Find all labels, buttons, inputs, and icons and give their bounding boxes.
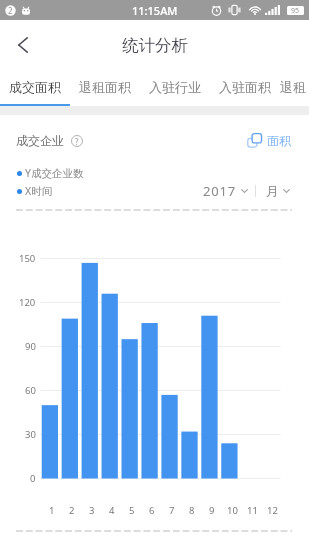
staticText: 3 bbox=[89, 504, 95, 517]
other: Vibrate bbox=[228, 4, 241, 16]
button[interactable]: 2017 bbox=[203, 182, 248, 200]
staticText: 60 bbox=[25, 384, 36, 397]
staticText: 2 bbox=[8, 5, 13, 16]
button[interactable]: 退租面积 bbox=[70, 69, 140, 104]
staticText: 12 bbox=[267, 504, 278, 517]
staticText: 8 bbox=[189, 504, 195, 517]
staticText: 11:15AM bbox=[132, 3, 178, 18]
button[interactable]: 面积 bbox=[247, 133, 291, 148]
staticText: 1 bbox=[49, 504, 55, 517]
staticText: 退租面积 bbox=[79, 79, 131, 95]
staticText: 成交面积 bbox=[9, 79, 61, 95]
staticText: 退租面积 bbox=[280, 79, 309, 95]
staticText: 面积 bbox=[267, 133, 291, 148]
other: Wi-Fi bbox=[248, 5, 262, 16]
staticText: 成交企业 bbox=[16, 133, 64, 148]
button[interactable]: 月 bbox=[266, 183, 290, 199]
staticText: 7 bbox=[169, 504, 175, 517]
other: Alarm bbox=[211, 5, 222, 16]
staticText: 2 bbox=[69, 504, 75, 517]
button[interactable]: 入驻行业 bbox=[140, 69, 210, 104]
staticText: 150 bbox=[19, 252, 36, 265]
staticText: 120 bbox=[19, 296, 36, 309]
button[interactable]: 成交面积 bbox=[0, 69, 70, 104]
staticText: 6 bbox=[149, 504, 155, 517]
staticText: 11 bbox=[247, 504, 258, 517]
staticText: 入驻面积 bbox=[219, 79, 271, 95]
other: Signal bbox=[265, 5, 281, 15]
staticText: 95 bbox=[291, 6, 300, 15]
staticText: 2017 bbox=[203, 182, 236, 200]
staticText: 4 bbox=[109, 504, 115, 517]
staticText: Y成交企业数 bbox=[25, 166, 84, 180]
staticText: ? bbox=[75, 136, 79, 147]
staticText: 5 bbox=[129, 504, 135, 517]
staticText: 0 bbox=[30, 472, 36, 485]
staticText: 统计分析 bbox=[122, 35, 188, 56]
staticText: 10 bbox=[227, 504, 238, 517]
button[interactable]: 入驻面积 bbox=[210, 69, 280, 104]
staticText: 月 bbox=[266, 183, 279, 199]
button[interactable]: Back bbox=[0, 22, 46, 68]
button[interactable]: 退租面积 bbox=[280, 69, 309, 104]
staticText: 入驻行业 bbox=[149, 79, 201, 95]
staticText: 90 bbox=[25, 340, 36, 353]
staticText: 9 bbox=[209, 504, 215, 517]
staticText: 30 bbox=[25, 428, 36, 441]
staticText: X时间 bbox=[25, 184, 53, 198]
